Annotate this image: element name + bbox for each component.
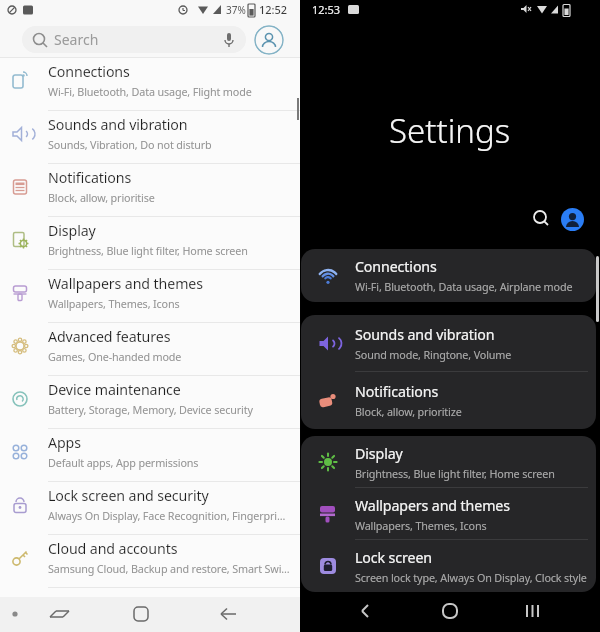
staticText: Cloud and accounts <box>48 539 178 558</box>
staticText: Wi-Fi, Bluetooth, Data usage, Airplane m… <box>355 279 573 294</box>
staticText: Settings <box>389 108 511 153</box>
button[interactable]: Lock screen and security <box>0 482 300 535</box>
button[interactable]: Device maintenance <box>0 376 300 429</box>
button[interactable] <box>400 594 500 632</box>
button[interactable]: Lock screen <box>301 540 596 592</box>
staticText: Advanced features <box>48 327 171 346</box>
button[interactable]: Display <box>0 217 300 270</box>
button[interactable]: Sounds and vibration <box>0 111 300 164</box>
staticText: Games, One-handed mode <box>48 349 182 364</box>
staticText: Battery, Storage, Memory, Device securit… <box>48 402 253 417</box>
button[interactable]: Cloud and accounts <box>0 535 300 588</box>
staticText: Lock screen <box>355 548 432 567</box>
staticText: Wallpapers and themes <box>355 496 510 515</box>
staticText: Connections <box>355 257 437 276</box>
button[interactable]: Search <box>22 26 246 53</box>
staticText: Notifications <box>355 382 439 401</box>
staticText: Samsung Cloud, Backup and restore, Smart… <box>48 561 290 576</box>
staticText: Default apps, App permissions <box>48 455 199 470</box>
button[interactable]: Connections <box>0 58 300 111</box>
staticText: Display <box>48 221 96 240</box>
button[interactable] <box>0 597 100 632</box>
button[interactable] <box>500 594 600 632</box>
staticText: Sound mode, Ringtone, Volume <box>355 347 512 362</box>
staticText: Brightness, Blue light filter, Home scre… <box>355 466 555 481</box>
staticText: Brightness, Blue light filter, Home scre… <box>48 243 248 258</box>
staticText: Block, allow, prioritize <box>355 404 462 419</box>
staticText: Wallpapers, Themes, Icons <box>355 518 487 533</box>
staticText: Device maintenance <box>48 380 181 399</box>
button[interactable]: Notifications <box>301 372 596 429</box>
staticText: Sounds and vibration <box>48 115 188 134</box>
staticText: 12:53 <box>312 2 341 17</box>
button[interactable]: Apps <box>0 429 300 482</box>
staticText: Sounds and vibration <box>355 325 495 344</box>
button[interactable]: Sounds and vibration <box>301 315 596 372</box>
staticText: Wallpapers and themes <box>48 274 203 293</box>
staticText: Wi-Fi, Bluetooth, Data usage, Flight mod… <box>48 84 252 99</box>
button[interactable] <box>200 597 300 632</box>
button[interactable]: Wallpapers and themes <box>301 488 596 540</box>
staticText: Apps <box>48 433 81 452</box>
staticText: Always On Display, Face Recognition, Fin… <box>48 508 286 523</box>
staticText: Search <box>54 30 99 49</box>
button[interactable]: Connections <box>301 249 596 302</box>
button[interactable]: Wallpapers and themes <box>0 270 300 323</box>
staticText: Screen lock type, Always On Display, Clo… <box>355 570 587 585</box>
staticText: 12:52 <box>259 2 288 17</box>
button[interactable]: Advanced features <box>0 323 300 376</box>
staticText: Connections <box>48 62 130 81</box>
button[interactable]: Notifications <box>0 164 300 217</box>
staticText: Lock screen and security <box>48 486 209 505</box>
button[interactable] <box>528 206 554 232</box>
staticText: Notifications <box>48 168 132 187</box>
staticText: Sounds, Vibration, Do not disturb <box>48 137 212 152</box>
button[interactable] <box>561 208 584 231</box>
button[interactable]: Display <box>301 436 596 488</box>
staticText: 37% <box>226 3 246 17</box>
staticText: Display <box>355 444 403 463</box>
button[interactable] <box>100 597 200 632</box>
button[interactable] <box>300 594 400 632</box>
staticText: Block, allow, prioritise <box>48 190 155 205</box>
button[interactable] <box>254 25 284 55</box>
staticText: Wallpapers, Themes, Icons <box>48 296 180 311</box>
